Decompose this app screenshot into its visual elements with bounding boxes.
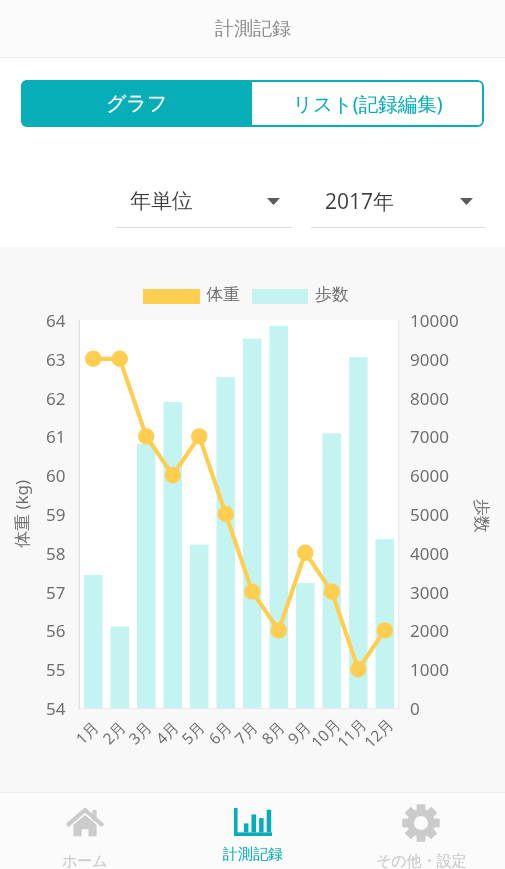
staticText: 計測記録	[223, 845, 283, 864]
staticText: 10000	[410, 309, 459, 332]
staticText: 56	[46, 619, 66, 642]
staticText: 歩数	[315, 284, 349, 305]
other: ホーム	[65, 803, 105, 843]
button[interactable]: グラフ	[21, 80, 252, 127]
staticText: 63	[46, 348, 66, 371]
staticText: 5月	[176, 716, 209, 748]
other: その他・設定	[401, 803, 441, 843]
staticText: 3000	[410, 581, 449, 604]
staticText: 3月	[123, 716, 156, 748]
staticText: 2月	[97, 716, 130, 748]
staticText: 7000	[410, 425, 449, 448]
staticText: 58	[46, 542, 66, 565]
staticText: 1月	[70, 716, 103, 748]
staticText: 年単位	[130, 188, 193, 214]
staticText: 4月	[150, 716, 183, 748]
staticText: 6000	[410, 464, 449, 487]
staticText: ホーム	[62, 852, 108, 869]
staticText: 6月	[203, 716, 236, 748]
staticText: 8月	[256, 716, 289, 748]
staticText: 2000	[410, 619, 449, 642]
staticText: 60	[46, 464, 66, 487]
staticText: 0	[410, 697, 420, 720]
button[interactable]: 年単位	[116, 185, 292, 228]
staticText: グラフ	[106, 91, 168, 116]
staticText: 59	[46, 503, 66, 526]
staticText: 9月	[282, 716, 315, 748]
staticText: 11月	[332, 713, 371, 752]
staticText: 1000	[410, 658, 449, 681]
staticText: 55	[46, 658, 66, 681]
staticText: 2017年	[325, 187, 395, 216]
staticText: その他・設定	[376, 852, 467, 869]
staticText: 8000	[410, 387, 449, 410]
staticText: 64	[46, 309, 66, 332]
staticText: 計測記録	[215, 17, 291, 41]
staticText: 4000	[410, 542, 449, 565]
staticText: 体重	[206, 284, 240, 305]
staticText: 62	[46, 387, 66, 410]
staticText: リスト(記録編集)	[293, 90, 443, 117]
staticText: 歩数	[471, 499, 492, 533]
staticText: 57	[46, 581, 66, 604]
staticText: 10月	[306, 713, 345, 752]
staticText: 体重 (kg)	[10, 479, 33, 548]
button[interactable]: ホーム	[0, 792, 169, 869]
staticText: 7月	[229, 716, 262, 748]
staticText: 61	[46, 425, 66, 448]
staticText: 5000	[410, 503, 449, 526]
button[interactable]: 計測記録	[169, 792, 337, 869]
staticText: 12月	[359, 713, 398, 752]
button[interactable]: その他・設定	[337, 792, 505, 869]
other: 計測記録	[234, 808, 272, 836]
staticText: 54	[46, 697, 66, 720]
staticText: 9000	[410, 348, 449, 371]
button[interactable]: リスト(記録編集)	[252, 80, 484, 127]
button[interactable]: 2017年	[311, 185, 485, 228]
